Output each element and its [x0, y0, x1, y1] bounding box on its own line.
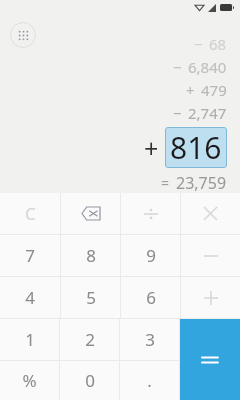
button[interactable]: 1	[0, 319, 59, 360]
button[interactable]: 2	[60, 319, 119, 360]
button[interactable]: Clear	[0, 193, 60, 234]
staticText: .	[147, 369, 152, 392]
button[interactable]: Multiply	[181, 193, 240, 234]
staticText: 6	[146, 286, 156, 309]
button[interactable]: 5	[61, 277, 120, 318]
staticText: 8	[86, 244, 96, 267]
button[interactable]: 7	[0, 235, 60, 276]
button[interactable]: Plus	[181, 277, 240, 318]
staticText: 6,840	[188, 57, 227, 77]
staticText: 23,759	[176, 172, 227, 193]
staticText: 68	[209, 34, 227, 54]
staticText: 2,747	[188, 103, 227, 123]
staticText: 9	[146, 244, 156, 267]
staticText: 5	[86, 286, 96, 309]
button[interactable]: 0	[60, 361, 119, 400]
button[interactable]: Divide	[121, 193, 180, 234]
button[interactable]: Equals	[180, 319, 240, 400]
button[interactable]: Backspace	[61, 193, 120, 234]
button[interactable]: 4	[0, 277, 60, 318]
staticText: 0	[85, 369, 95, 392]
staticText: C	[25, 202, 36, 225]
button[interactable]: %	[0, 361, 59, 400]
staticText: +	[144, 131, 159, 165]
button[interactable]: 9	[121, 235, 180, 276]
staticText: 3	[145, 328, 155, 351]
staticText: =	[161, 173, 170, 192]
staticText: 479	[201, 80, 227, 100]
button[interactable]: 816	[170, 127, 222, 168]
button[interactable]: 3	[120, 319, 179, 360]
staticText: +	[186, 80, 195, 100]
staticText: 1	[25, 328, 35, 351]
button[interactable]: 8	[61, 235, 120, 276]
staticText: −	[173, 103, 182, 123]
button[interactable]: History	[10, 22, 36, 48]
staticText: 4	[25, 286, 35, 309]
staticText: 7	[25, 244, 35, 267]
staticText: 816	[170, 127, 222, 168]
staticText: 2	[85, 328, 95, 351]
button[interactable]: .	[120, 361, 179, 400]
button[interactable]: 6	[121, 277, 180, 318]
staticText: −	[194, 34, 203, 54]
staticText: %	[22, 369, 37, 392]
staticText: −	[173, 57, 182, 77]
